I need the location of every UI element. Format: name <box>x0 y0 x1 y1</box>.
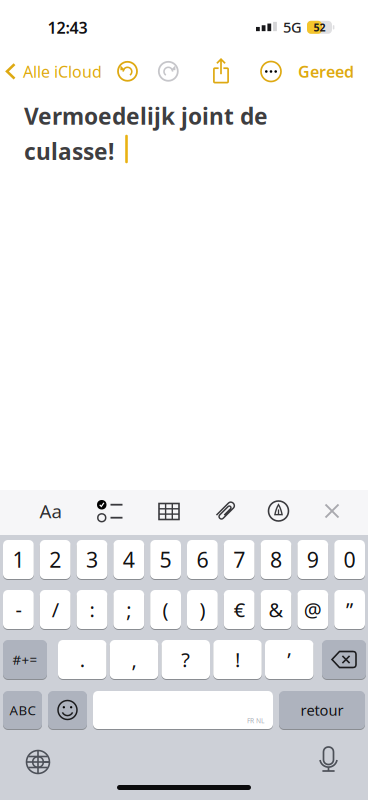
staticText: 3 <box>86 545 98 574</box>
button[interactable]: & <box>261 590 291 629</box>
button[interactable]: 1 <box>3 540 34 579</box>
staticText: ” <box>346 596 353 623</box>
button[interactable]: ; <box>113 590 144 629</box>
staticText: / <box>52 596 59 623</box>
staticText: Aa <box>39 499 61 523</box>
staticText: Vermoedelijk joint de <box>24 101 268 131</box>
staticText: @ <box>304 596 322 623</box>
button[interactable]: #+= <box>3 640 47 679</box>
staticText: , <box>131 646 136 673</box>
staticText: ’ <box>287 646 291 673</box>
button[interactable]: Herstel <box>117 61 138 82</box>
staticText: 6 <box>196 545 208 574</box>
staticText: 9 <box>307 545 319 574</box>
staticText: culasse! <box>24 136 114 166</box>
staticText: 7 <box>233 545 245 574</box>
button[interactable]: Verwijder <box>322 640 366 679</box>
button[interactable]: Dicteer <box>317 746 340 772</box>
button[interactable]: Markering <box>267 500 289 522</box>
staticText: & <box>268 596 283 623</box>
button[interactable]: ? <box>161 640 210 679</box>
button[interactable]: retour <box>279 691 365 729</box>
staticText: ( <box>163 596 169 623</box>
button[interactable]: ) <box>187 590 218 629</box>
button[interactable]: 0 <box>334 540 365 579</box>
button[interactable]: , <box>110 640 158 679</box>
staticText: 8 <box>270 545 282 574</box>
button[interactable]: spatie <box>93 691 273 729</box>
button[interactable]: ! <box>213 640 262 679</box>
staticText: Alle iCloud <box>23 61 102 82</box>
staticText: 2 <box>49 545 61 574</box>
button[interactable]: Gereed <box>298 61 354 82</box>
staticText: ABC <box>9 701 35 719</box>
button[interactable]: 7 <box>224 540 255 579</box>
button[interactable]: 4 <box>113 540 144 579</box>
button[interactable]: 8 <box>261 540 291 579</box>
staticText: #+= <box>12 651 37 668</box>
button[interactable]: 9 <box>297 540 328 579</box>
button[interactable]: @ <box>297 590 328 629</box>
button[interactable]: 2 <box>40 540 71 579</box>
staticText: . <box>80 646 85 673</box>
button[interactable]: Volgend toetsenbord <box>25 749 50 774</box>
button[interactable]: Deel <box>213 58 229 83</box>
button[interactable]: ABC <box>3 691 42 729</box>
button[interactable]: 5 <box>150 540 181 579</box>
button[interactable]: Checklist <box>96 499 122 522</box>
button[interactable]: € <box>224 590 255 629</box>
staticText: 52 <box>313 20 325 34</box>
button[interactable]: 3 <box>77 540 107 579</box>
button[interactable]: Opmaak <box>39 499 61 523</box>
button[interactable]: ’ <box>265 640 313 679</box>
staticText: € <box>234 596 245 623</box>
staticText: 5G <box>283 17 302 37</box>
button[interactable]: Sluit toetsenbord <box>324 503 339 518</box>
button[interactable]: / <box>40 590 71 629</box>
button[interactable]: Terug naar Alle iCloud <box>5 59 125 83</box>
staticText: 1 <box>12 545 24 574</box>
button[interactable]: Opnieuw <box>158 61 179 82</box>
staticText: retour <box>300 700 343 720</box>
staticText: - <box>15 596 21 623</box>
staticText: ; <box>126 596 131 623</box>
staticText: 4 <box>123 545 135 574</box>
button[interactable]: : <box>77 590 107 629</box>
button[interactable]: - <box>3 590 34 629</box>
staticText: 12:43 <box>47 17 87 38</box>
button[interactable]: ( <box>150 590 181 629</box>
staticText: 5 <box>160 545 172 574</box>
staticText: FR NL <box>247 716 264 725</box>
button[interactable]: Bijlage <box>214 499 238 523</box>
button[interactable]: 6 <box>187 540 218 579</box>
staticText: ? <box>181 646 190 673</box>
button[interactable]: Emoji <box>48 691 87 729</box>
button[interactable]: Tabel <box>158 502 180 520</box>
button[interactable]: ” <box>334 590 365 629</box>
staticText: 0 <box>344 545 356 574</box>
staticText: ) <box>199 596 205 623</box>
staticText: ! <box>235 646 240 673</box>
button[interactable]: . <box>58 640 106 679</box>
staticText: Gereed <box>298 61 354 82</box>
button[interactable]: Meer <box>260 60 282 82</box>
staticText: : <box>89 596 94 623</box>
